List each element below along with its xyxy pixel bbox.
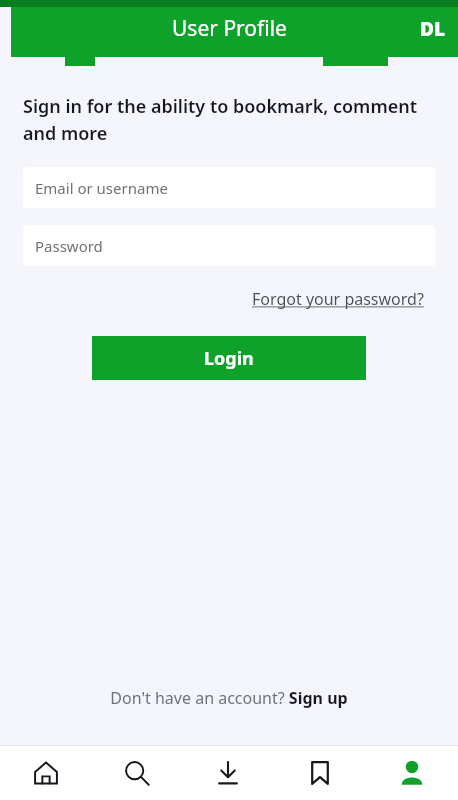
button[interactable]: Profile	[366, 745, 458, 800]
staticText: Login	[204, 346, 254, 371]
button[interactable]: Don't have an account? Sign up	[0, 677, 458, 719]
button[interactable]: Password	[23, 225, 435, 266]
button[interactable]: Search	[91, 745, 182, 800]
button[interactable]: DL logo	[420, 16, 446, 42]
button[interactable]: Home	[0, 745, 91, 800]
staticText: Don't have an account? Sign up	[110, 687, 348, 709]
button[interactable]: Bookmarks	[274, 745, 366, 800]
staticText: Password	[35, 236, 103, 256]
staticText: Forgot your password?	[252, 288, 424, 310]
button[interactable]: Email or username	[23, 167, 435, 208]
staticText: Email or username	[35, 178, 168, 198]
staticText: DL	[420, 16, 446, 42]
staticText: Sign in for the ability to bookmark, com…	[23, 94, 433, 145]
button[interactable]: Downloads	[182, 745, 274, 800]
button[interactable]: Forgot your password?	[248, 284, 428, 314]
staticText: User Profile	[172, 14, 287, 43]
button[interactable]: Login	[92, 336, 366, 380]
